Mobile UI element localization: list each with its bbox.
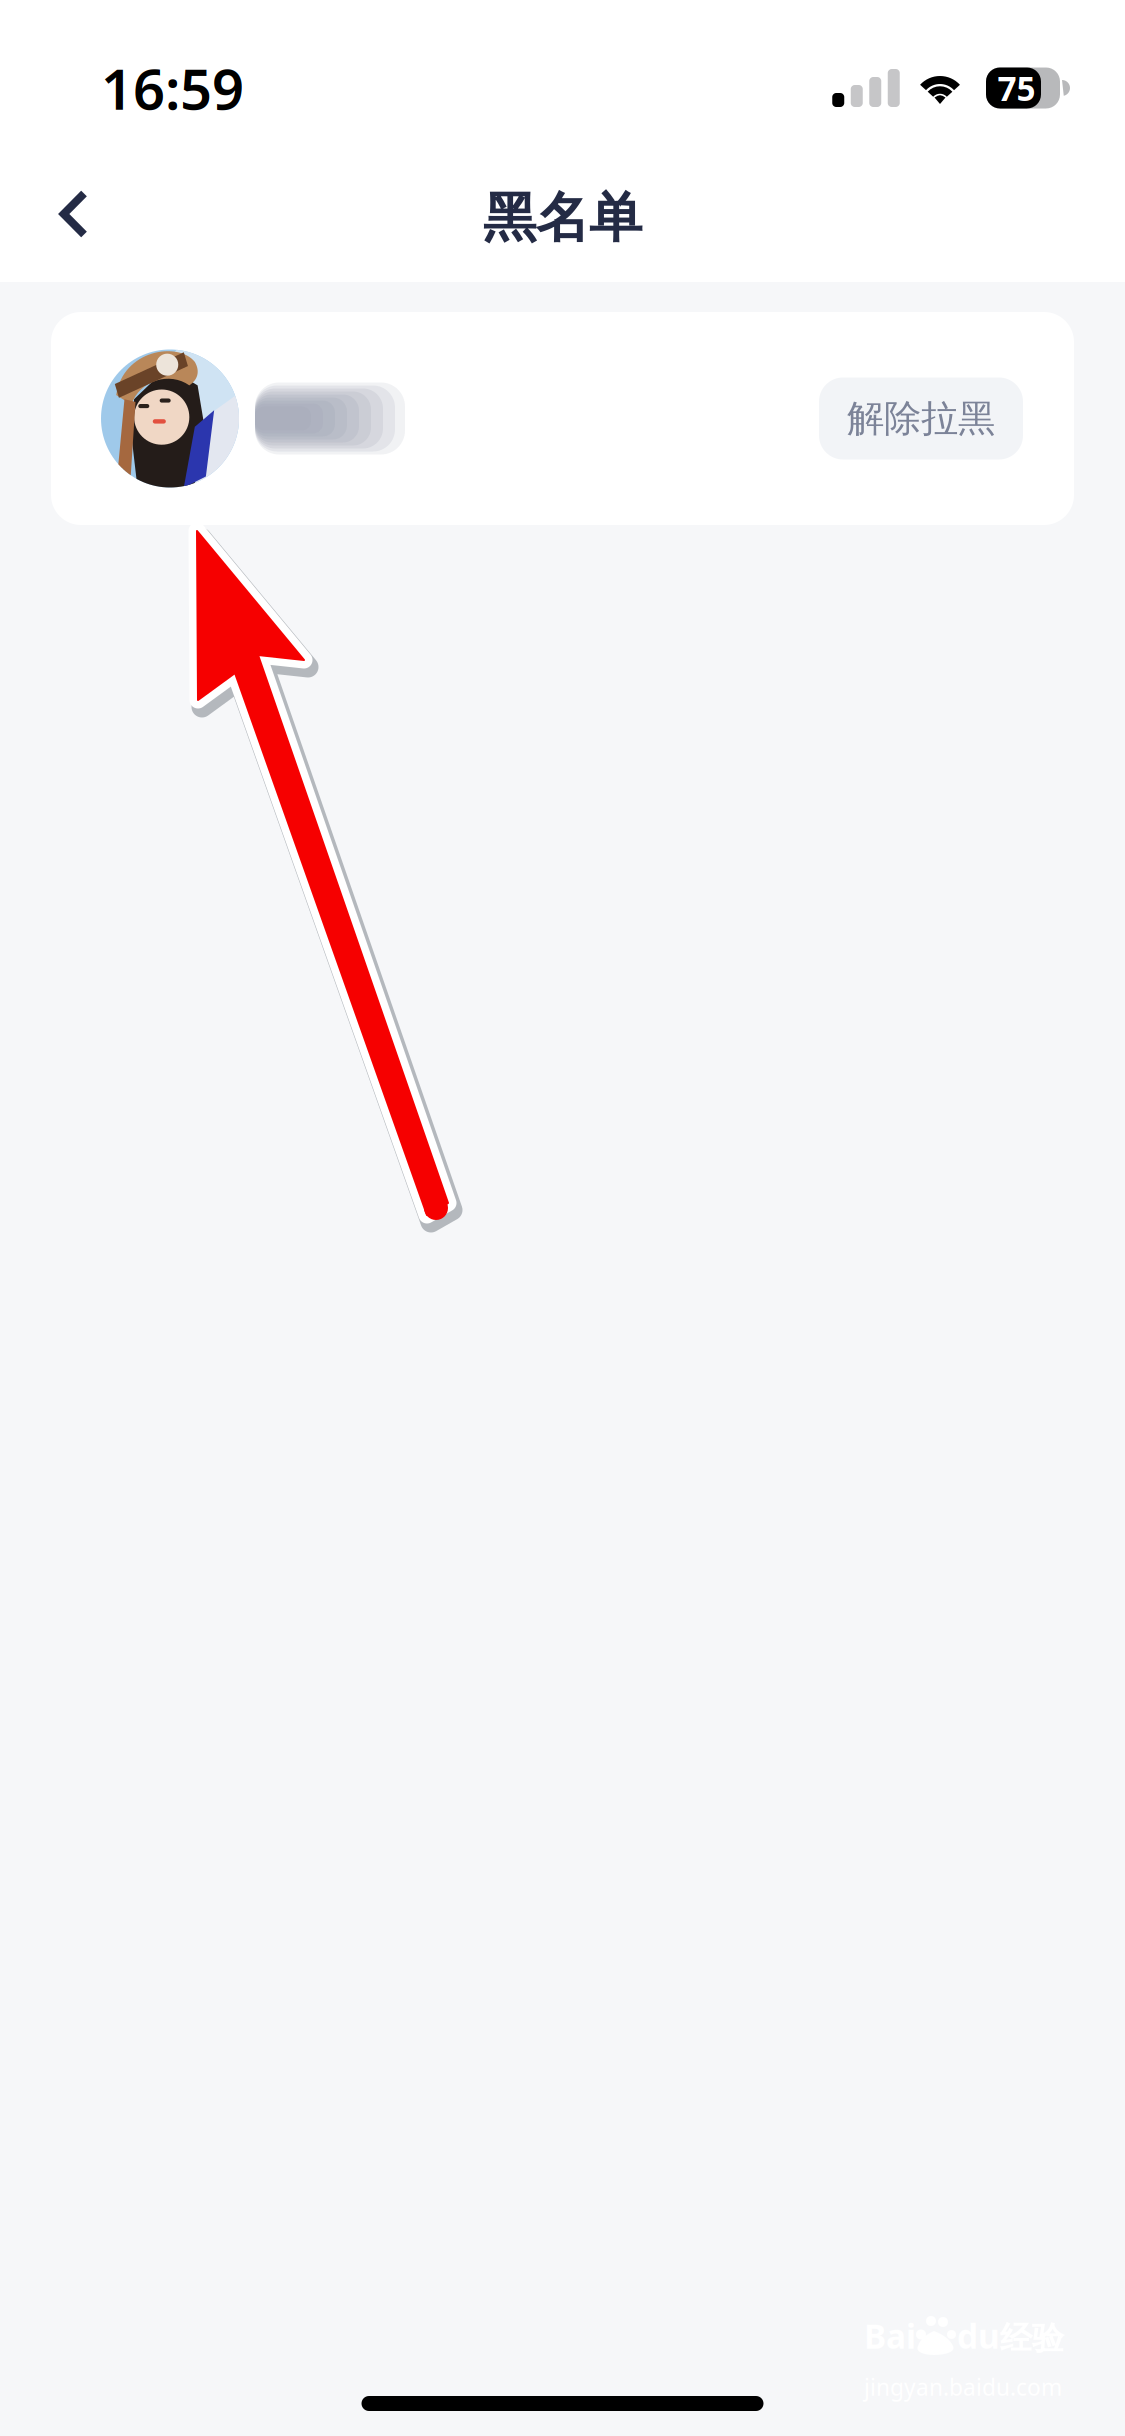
button[interactable]: 解除拉黑 (819, 377, 1023, 459)
staticText: 经验 (1000, 2319, 1064, 2358)
button[interactable]: Back (15, 142, 133, 272)
staticText: 75 (997, 66, 1035, 110)
staticText: 解除拉黑 (847, 396, 995, 441)
staticText: 16:59 (101, 51, 244, 125)
staticText: 黑名单 (483, 185, 642, 251)
staticText: Bai (864, 2314, 916, 2358)
staticText: du (957, 2314, 1000, 2358)
